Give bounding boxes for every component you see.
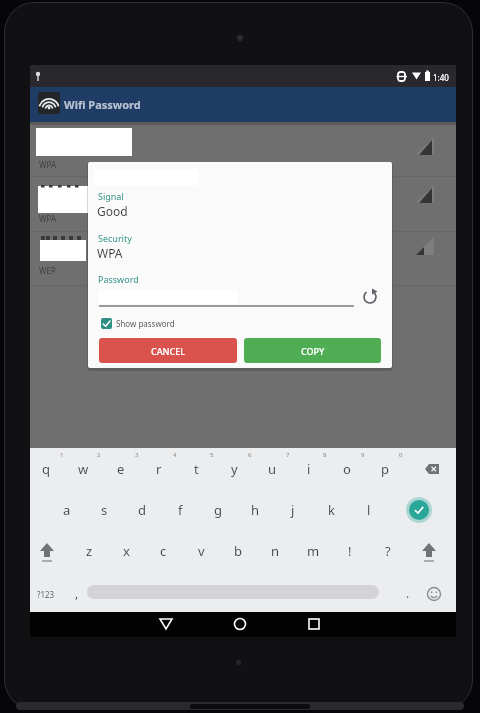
staticText: COPY [301, 345, 325, 357]
staticText: p [381, 460, 389, 478]
staticText: ! [348, 542, 352, 560]
staticText: 8 [323, 451, 327, 459]
staticText: g [214, 501, 222, 519]
staticText: s [101, 501, 108, 519]
staticText: 1 [60, 451, 64, 459]
staticText: y [231, 460, 238, 478]
staticText: h [251, 501, 260, 519]
staticText: d [138, 501, 146, 519]
staticText: Security [98, 232, 132, 244]
staticText: f [178, 501, 183, 519]
staticText: Password [98, 273, 139, 285]
staticText: z [86, 542, 93, 560]
staticText: m [307, 542, 320, 560]
staticText: CANCEL [151, 345, 186, 357]
staticText: Signal [98, 190, 124, 202]
staticText: b [234, 542, 242, 560]
staticText: WPA [39, 213, 56, 224]
staticText: x [123, 542, 130, 560]
staticText: i [307, 460, 311, 478]
staticText: 2 [97, 451, 101, 459]
staticText: Show password [116, 318, 175, 329]
staticText: u [268, 460, 277, 478]
staticText: c [160, 542, 167, 560]
staticText: . [406, 585, 410, 601]
staticText: 3 [135, 451, 139, 459]
staticText: t [194, 460, 199, 478]
staticText: 1:40 [433, 72, 449, 83]
staticText: Good [97, 203, 128, 219]
staticText: w [78, 460, 89, 478]
staticText: r [156, 460, 162, 478]
staticText: ? [385, 542, 391, 560]
staticText: e [117, 460, 125, 478]
staticText: v [198, 542, 205, 560]
staticText: n [271, 542, 280, 560]
staticText: k [328, 501, 335, 519]
staticText: q [42, 460, 50, 478]
staticText: 7 [286, 451, 290, 459]
staticText: WEP [39, 265, 56, 276]
staticText: 6 [248, 451, 252, 459]
staticText: o [343, 460, 351, 478]
staticText: 4 [173, 451, 177, 459]
staticText: Wifi Password [64, 97, 141, 112]
staticText: , [75, 585, 79, 601]
staticText: j [291, 501, 295, 519]
staticText: WPA [39, 159, 56, 170]
staticText: a [63, 501, 71, 519]
staticText: l [367, 501, 371, 519]
staticText: 5 [210, 451, 214, 459]
staticText: 0 [399, 451, 403, 459]
staticText: ?123 [37, 589, 55, 600]
staticText: 9 [361, 451, 365, 459]
staticText: WPA [97, 245, 123, 261]
